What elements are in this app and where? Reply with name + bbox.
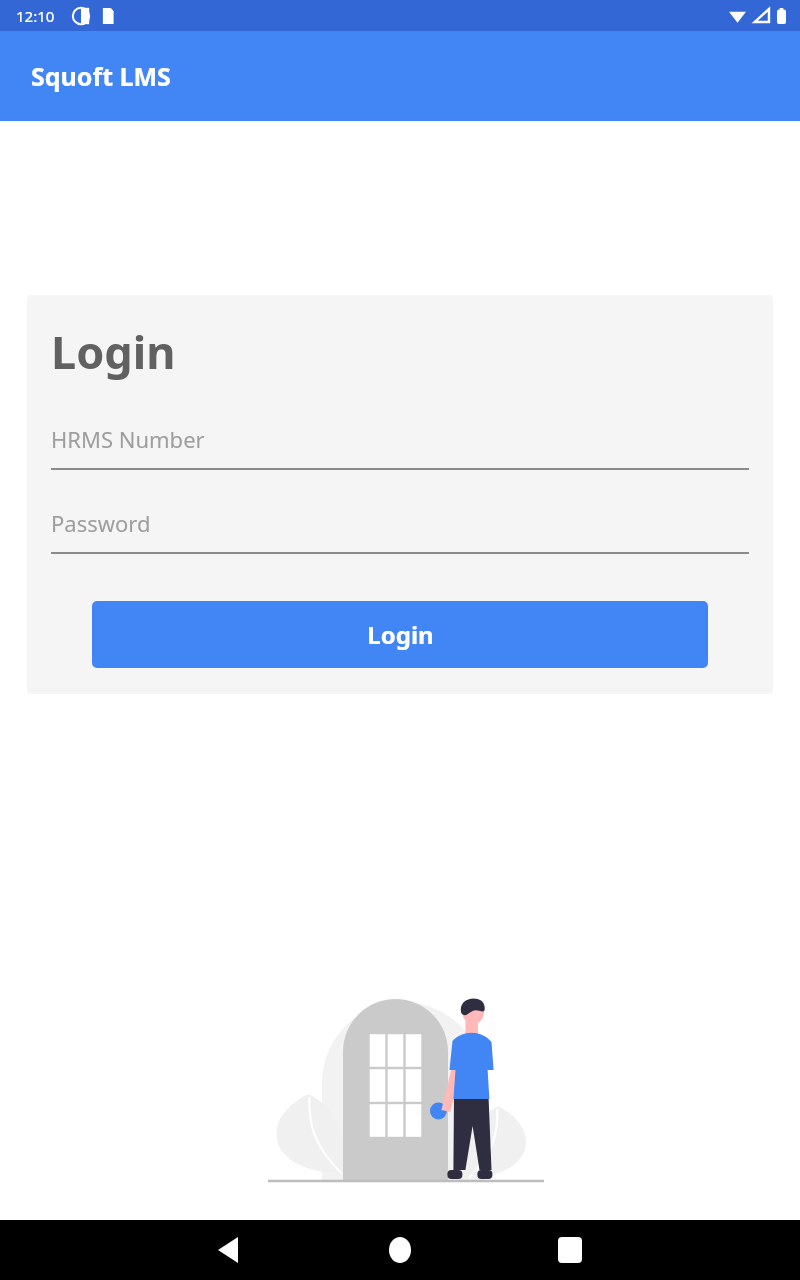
staticText: Password — [51, 508, 151, 538]
staticText: Squoft LMS — [31, 59, 171, 93]
button[interactable]: Login — [92, 601, 708, 668]
button[interactable]: HRMS Number — [51, 424, 749, 470]
button[interactable]: Password — [51, 508, 749, 554]
staticText: 12:10 — [16, 6, 55, 26]
staticText: Login — [367, 618, 434, 651]
staticText: HRMS Number — [51, 424, 205, 454]
staticText: Login — [51, 321, 176, 382]
